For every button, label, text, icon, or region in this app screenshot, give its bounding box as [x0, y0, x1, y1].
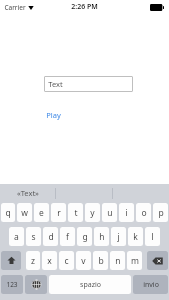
- staticText: Carrier: [4, 3, 26, 12]
- staticText: a: [14, 231, 19, 243]
- staticText: w: [21, 207, 28, 219]
- staticText: f: [66, 231, 69, 243]
- button[interactable]: e: [34, 203, 49, 222]
- button[interactable]: spazio: [49, 275, 131, 294]
- staticText: z: [31, 255, 35, 267]
- button[interactable]: t: [68, 203, 83, 222]
- button[interactable]: i: [119, 203, 134, 222]
- staticText: v: [81, 255, 86, 267]
- staticText: t: [74, 207, 78, 219]
- button[interactable]: y: [85, 203, 100, 222]
- button[interactable]: j: [111, 227, 126, 246]
- button[interactable]: d: [43, 227, 58, 246]
- staticText: p: [158, 207, 164, 219]
- staticText: «Text»: [17, 188, 39, 198]
- staticText: j: [117, 231, 120, 243]
- staticText: u: [107, 207, 113, 219]
- staticText: invio: [143, 280, 159, 290]
- button[interactable]: Backspace: [147, 251, 168, 270]
- staticText: q: [5, 207, 11, 219]
- button[interactable]: m: [127, 251, 142, 270]
- staticText: d: [48, 231, 54, 243]
- button[interactable]: h: [94, 227, 109, 246]
- button[interactable]: v: [76, 251, 91, 270]
- staticText: c: [64, 255, 69, 267]
- button[interactable]: u: [102, 203, 117, 222]
- staticText: g: [82, 231, 88, 243]
- button[interactable]: l: [145, 227, 160, 246]
- button[interactable]: r: [51, 203, 66, 222]
- staticText: b: [98, 255, 104, 267]
- staticText: s: [31, 231, 36, 243]
- staticText: h: [99, 231, 105, 243]
- button[interactable]: c: [59, 251, 74, 270]
- staticText: e: [39, 207, 44, 219]
- button[interactable]: Shift: [1, 251, 21, 270]
- button[interactable]: invio: [133, 275, 168, 294]
- staticText: i: [125, 207, 128, 219]
- button[interactable]: Change keyboard: [25, 275, 47, 294]
- staticText: x: [47, 255, 52, 267]
- staticText: m: [131, 255, 139, 267]
- button[interactable]: w: [17, 203, 32, 222]
- button[interactable]: Play: [45, 109, 62, 121]
- staticText: n: [115, 255, 121, 267]
- button[interactable]: x: [42, 251, 57, 270]
- staticText: l: [151, 231, 154, 243]
- button[interactable]: q: [1, 203, 15, 222]
- button[interactable]: p: [153, 203, 168, 222]
- button[interactable]: k: [128, 227, 143, 246]
- staticText: 123: [6, 280, 18, 289]
- staticText: Play: [46, 110, 61, 120]
- staticText: spazio: [80, 280, 101, 290]
- staticText: 2:26 PM: [71, 2, 98, 12]
- button[interactable]: z: [26, 251, 40, 270]
- button[interactable]: Text: [44, 76, 133, 92]
- button[interactable]: g: [77, 227, 92, 246]
- staticText: Text: [48, 79, 63, 89]
- button[interactable]: 123: [1, 275, 23, 294]
- button[interactable]: f: [60, 227, 75, 246]
- button[interactable]: a: [9, 227, 24, 246]
- staticText: y: [90, 207, 95, 219]
- button[interactable]: «Text»: [0, 184, 55, 202]
- button[interactable]: n: [110, 251, 125, 270]
- staticText: k: [133, 231, 138, 243]
- staticText: r: [57, 207, 61, 219]
- button[interactable]: o: [136, 203, 151, 222]
- staticText: o: [141, 207, 147, 219]
- button[interactable]: b: [93, 251, 108, 270]
- button[interactable]: s: [26, 227, 41, 246]
